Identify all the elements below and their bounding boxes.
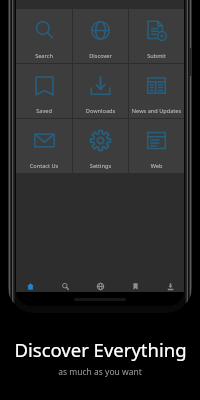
staticText: Downloads	[74, 107, 127, 115]
button[interactable]: Explore	[91, 273, 109, 291]
button[interactable]: Settings	[73, 119, 128, 173]
button[interactable]: Downloads	[161, 273, 179, 291]
button[interactable]: Downloads	[73, 64, 128, 118]
button[interactable]: Submit	[129, 9, 184, 63]
staticText: Discover	[74, 52, 127, 60]
staticText: Settings	[74, 162, 127, 170]
staticText: Discover Everything	[14, 337, 187, 362]
button[interactable]: Saved	[16, 64, 72, 118]
button[interactable]: News and Updates	[129, 64, 184, 118]
staticText: Web	[130, 162, 183, 170]
staticText: as much as you want	[58, 366, 142, 378]
button[interactable]: Search	[16, 9, 72, 63]
button[interactable]: Contact Us	[16, 119, 72, 173]
staticText: Search	[17, 52, 71, 60]
button[interactable]: Search	[56, 273, 74, 291]
staticText: News and Updates	[130, 107, 183, 115]
button[interactable]: Web	[129, 119, 184, 173]
button[interactable]: Discover	[73, 9, 128, 63]
button[interactable]: Home	[21, 273, 39, 291]
staticText: Submit	[130, 52, 183, 60]
button[interactable]: Saved	[126, 273, 144, 291]
staticText: Saved	[17, 107, 71, 115]
staticText: Contact Us	[17, 162, 71, 170]
